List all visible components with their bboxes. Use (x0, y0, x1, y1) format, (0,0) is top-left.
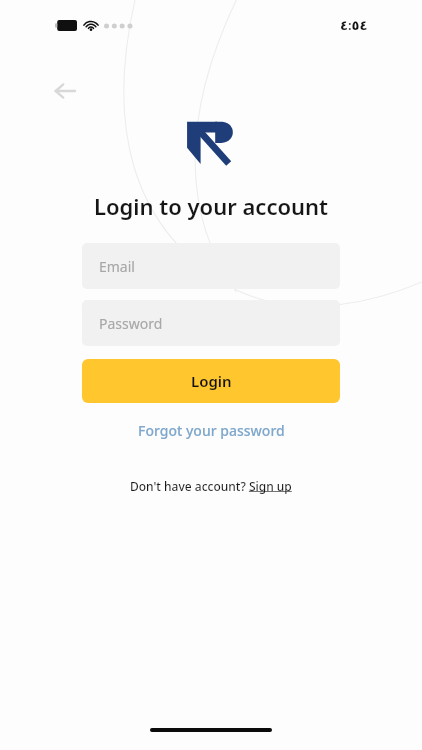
button[interactable]: Forgot your password (128, 417, 295, 444)
button[interactable]: Password (82, 300, 340, 346)
staticText: Login (191, 371, 232, 391)
button[interactable]: Login (82, 359, 340, 403)
staticText: Don't have account? Sign up (130, 478, 292, 494)
staticText: Login to your account (94, 191, 329, 221)
button[interactable]: Email (82, 243, 340, 289)
staticText: Password (99, 314, 163, 333)
staticText: Forgot your password (138, 421, 285, 440)
staticText: Email (99, 257, 135, 276)
button[interactable]: Back (46, 72, 84, 110)
button[interactable]: Don't have account? Sign up (120, 474, 302, 498)
staticText: ٤:٥٤ (340, 16, 368, 34)
